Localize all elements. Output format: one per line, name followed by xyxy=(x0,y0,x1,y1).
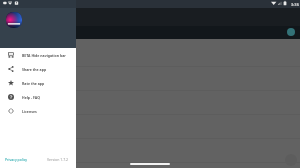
staticText: Help - FAQ xyxy=(22,95,40,100)
staticText: Share the app xyxy=(22,67,47,72)
button[interactable]: BETA Hide navigation bar xyxy=(0,48,76,62)
button[interactable]: Help - FAQ xyxy=(0,90,76,104)
button[interactable] xyxy=(0,139,300,162)
button[interactable]: Rate the app xyxy=(0,76,76,90)
staticText: 3:36 xyxy=(291,2,299,7)
button[interactable]: Licenses xyxy=(0,104,76,118)
staticText: BETA Hide navigation bar xyxy=(22,53,66,58)
button[interactable]: Privacy policy xyxy=(5,157,28,162)
staticText: Licenses xyxy=(22,109,37,114)
button[interactable] xyxy=(0,91,300,114)
button[interactable] xyxy=(0,43,300,66)
button[interactable]: Share the app xyxy=(0,62,76,76)
staticText: Version 1.7.2 xyxy=(47,157,69,162)
button[interactable] xyxy=(0,67,300,90)
button[interactable]: Search xyxy=(287,28,295,36)
button[interactable] xyxy=(0,115,300,138)
staticText: Rate the app xyxy=(22,81,45,86)
